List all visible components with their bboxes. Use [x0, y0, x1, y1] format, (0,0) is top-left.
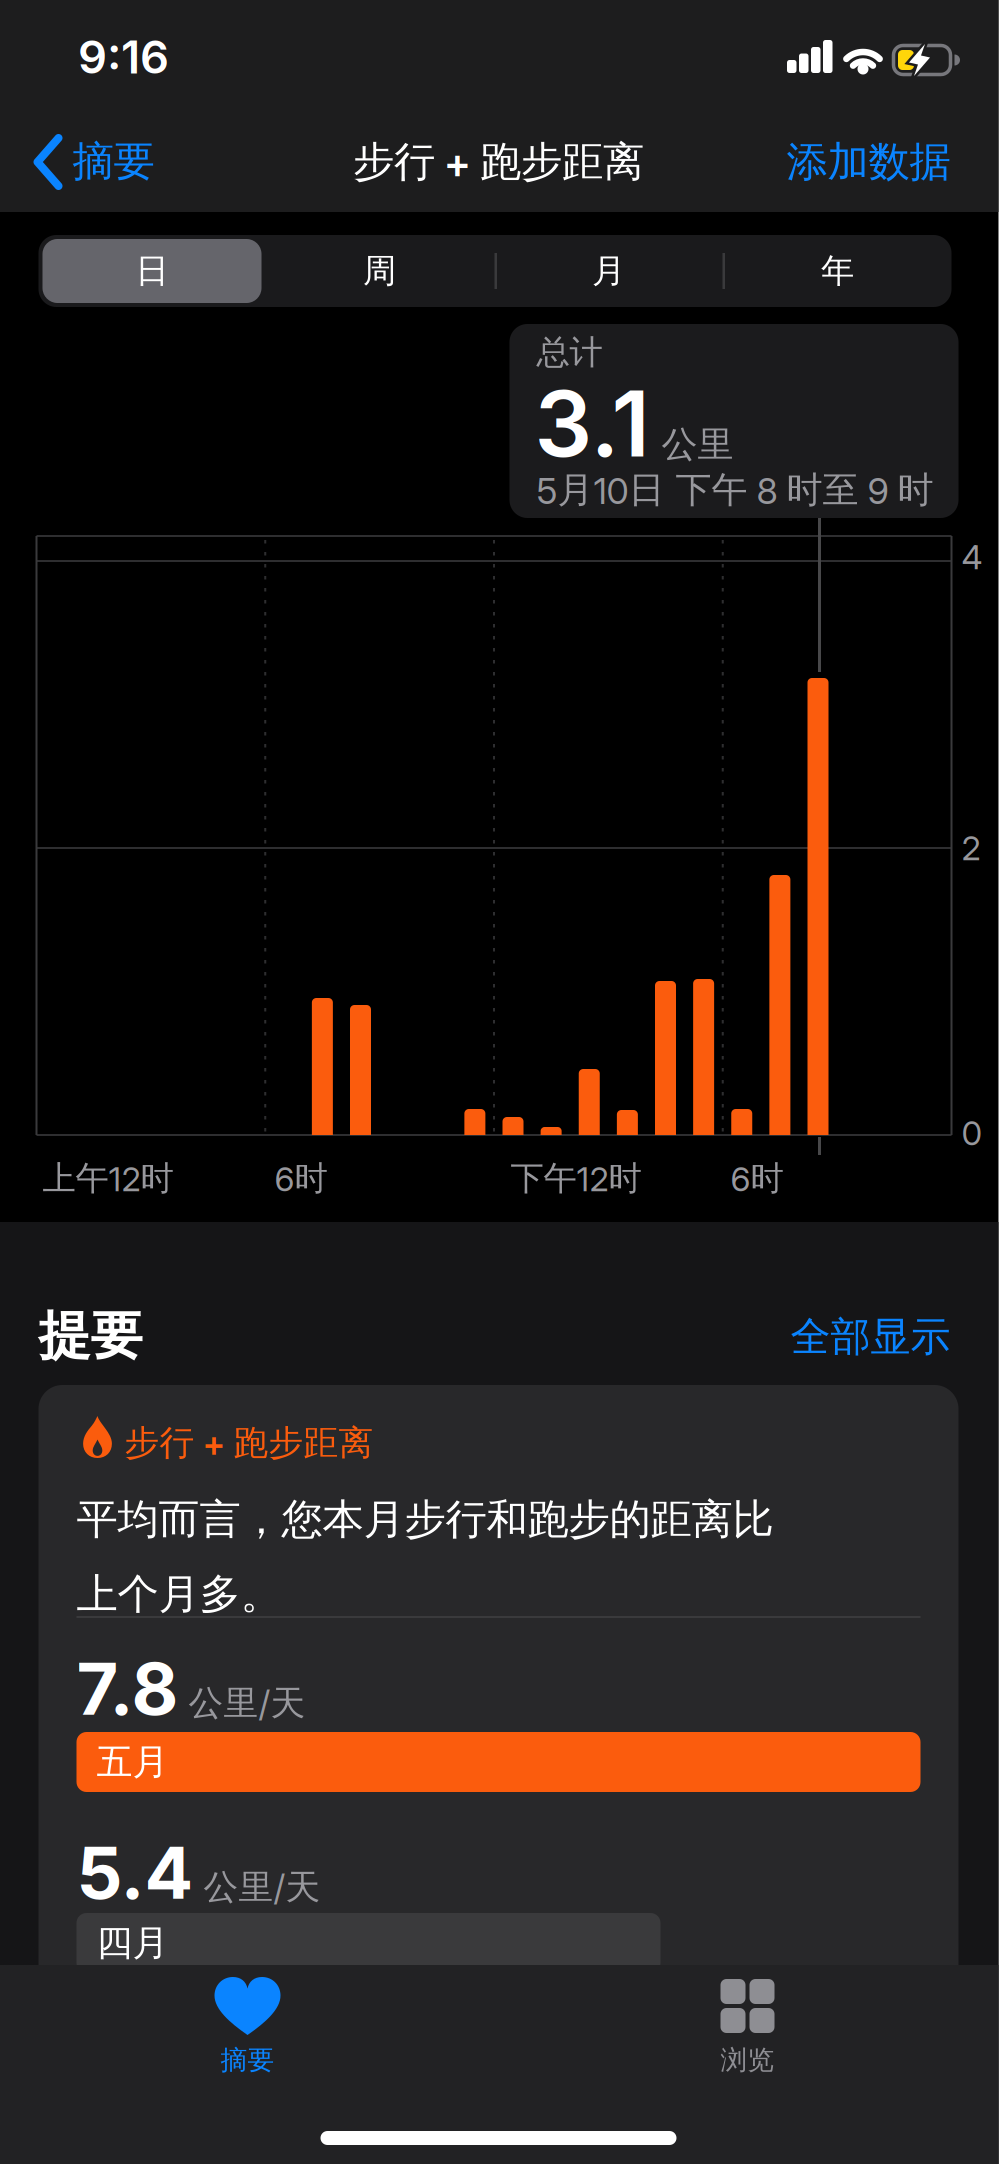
staticText: 5月10日 下午 8 时至 9 时	[536, 468, 933, 512]
staticText: 上个月多。	[76, 1569, 281, 1620]
button[interactable]: 步行 + 跑步距离	[38, 1385, 958, 2085]
staticText: 月	[592, 250, 625, 291]
staticText: 6时	[730, 1158, 783, 1199]
staticText: 日	[135, 250, 168, 291]
staticText: 2	[961, 828, 980, 868]
staticText: 周	[363, 250, 396, 291]
staticText: 9:16	[78, 30, 169, 84]
staticText: 添加数据	[786, 137, 950, 187]
button[interactable]: 浏览	[647, 1965, 847, 2085]
staticText: 四月	[96, 1921, 168, 1965]
button[interactable]: 摘要	[28, 132, 208, 194]
staticText: 提要	[38, 1304, 142, 1368]
button[interactable]: 添加数据	[730, 134, 950, 190]
staticText: 摘要	[220, 2044, 274, 2076]
staticText: 7.8	[76, 1646, 178, 1731]
staticText: 5.4	[76, 1830, 193, 1915]
staticText: 总计	[536, 332, 602, 373]
staticText: 公里/天	[188, 1682, 305, 1724]
staticText: 6时	[274, 1158, 327, 1199]
staticText: 五月	[96, 1740, 168, 1784]
staticText: 公里	[661, 422, 733, 467]
button[interactable]: 全部显示	[730, 1312, 950, 1362]
staticText: 步行 + 跑步距离	[124, 1422, 373, 1464]
staticText: 公里/天	[203, 1866, 320, 1908]
button[interactable]: 摘要	[147, 1965, 347, 2085]
staticText: 下午12时	[510, 1158, 641, 1199]
button[interactable]: 日	[42, 239, 261, 303]
staticText: 摘要	[72, 136, 154, 187]
button[interactable]: 年	[724, 239, 950, 303]
staticText: 平均而言，您本月步行和跑步的距离比	[76, 1494, 773, 1545]
staticText: 年	[821, 250, 854, 291]
staticText: 步行 + 跑步距离	[353, 137, 644, 187]
staticText: 全部显示	[790, 1312, 950, 1361]
staticText: 上午12时	[42, 1158, 173, 1199]
staticText: 浏览	[720, 2044, 774, 2076]
staticText: 4	[961, 537, 982, 577]
button[interactable]: 周	[266, 239, 492, 303]
staticText: 0	[961, 1113, 982, 1153]
staticText: 3.1	[534, 370, 649, 477]
button[interactable]: 月	[495, 239, 721, 303]
